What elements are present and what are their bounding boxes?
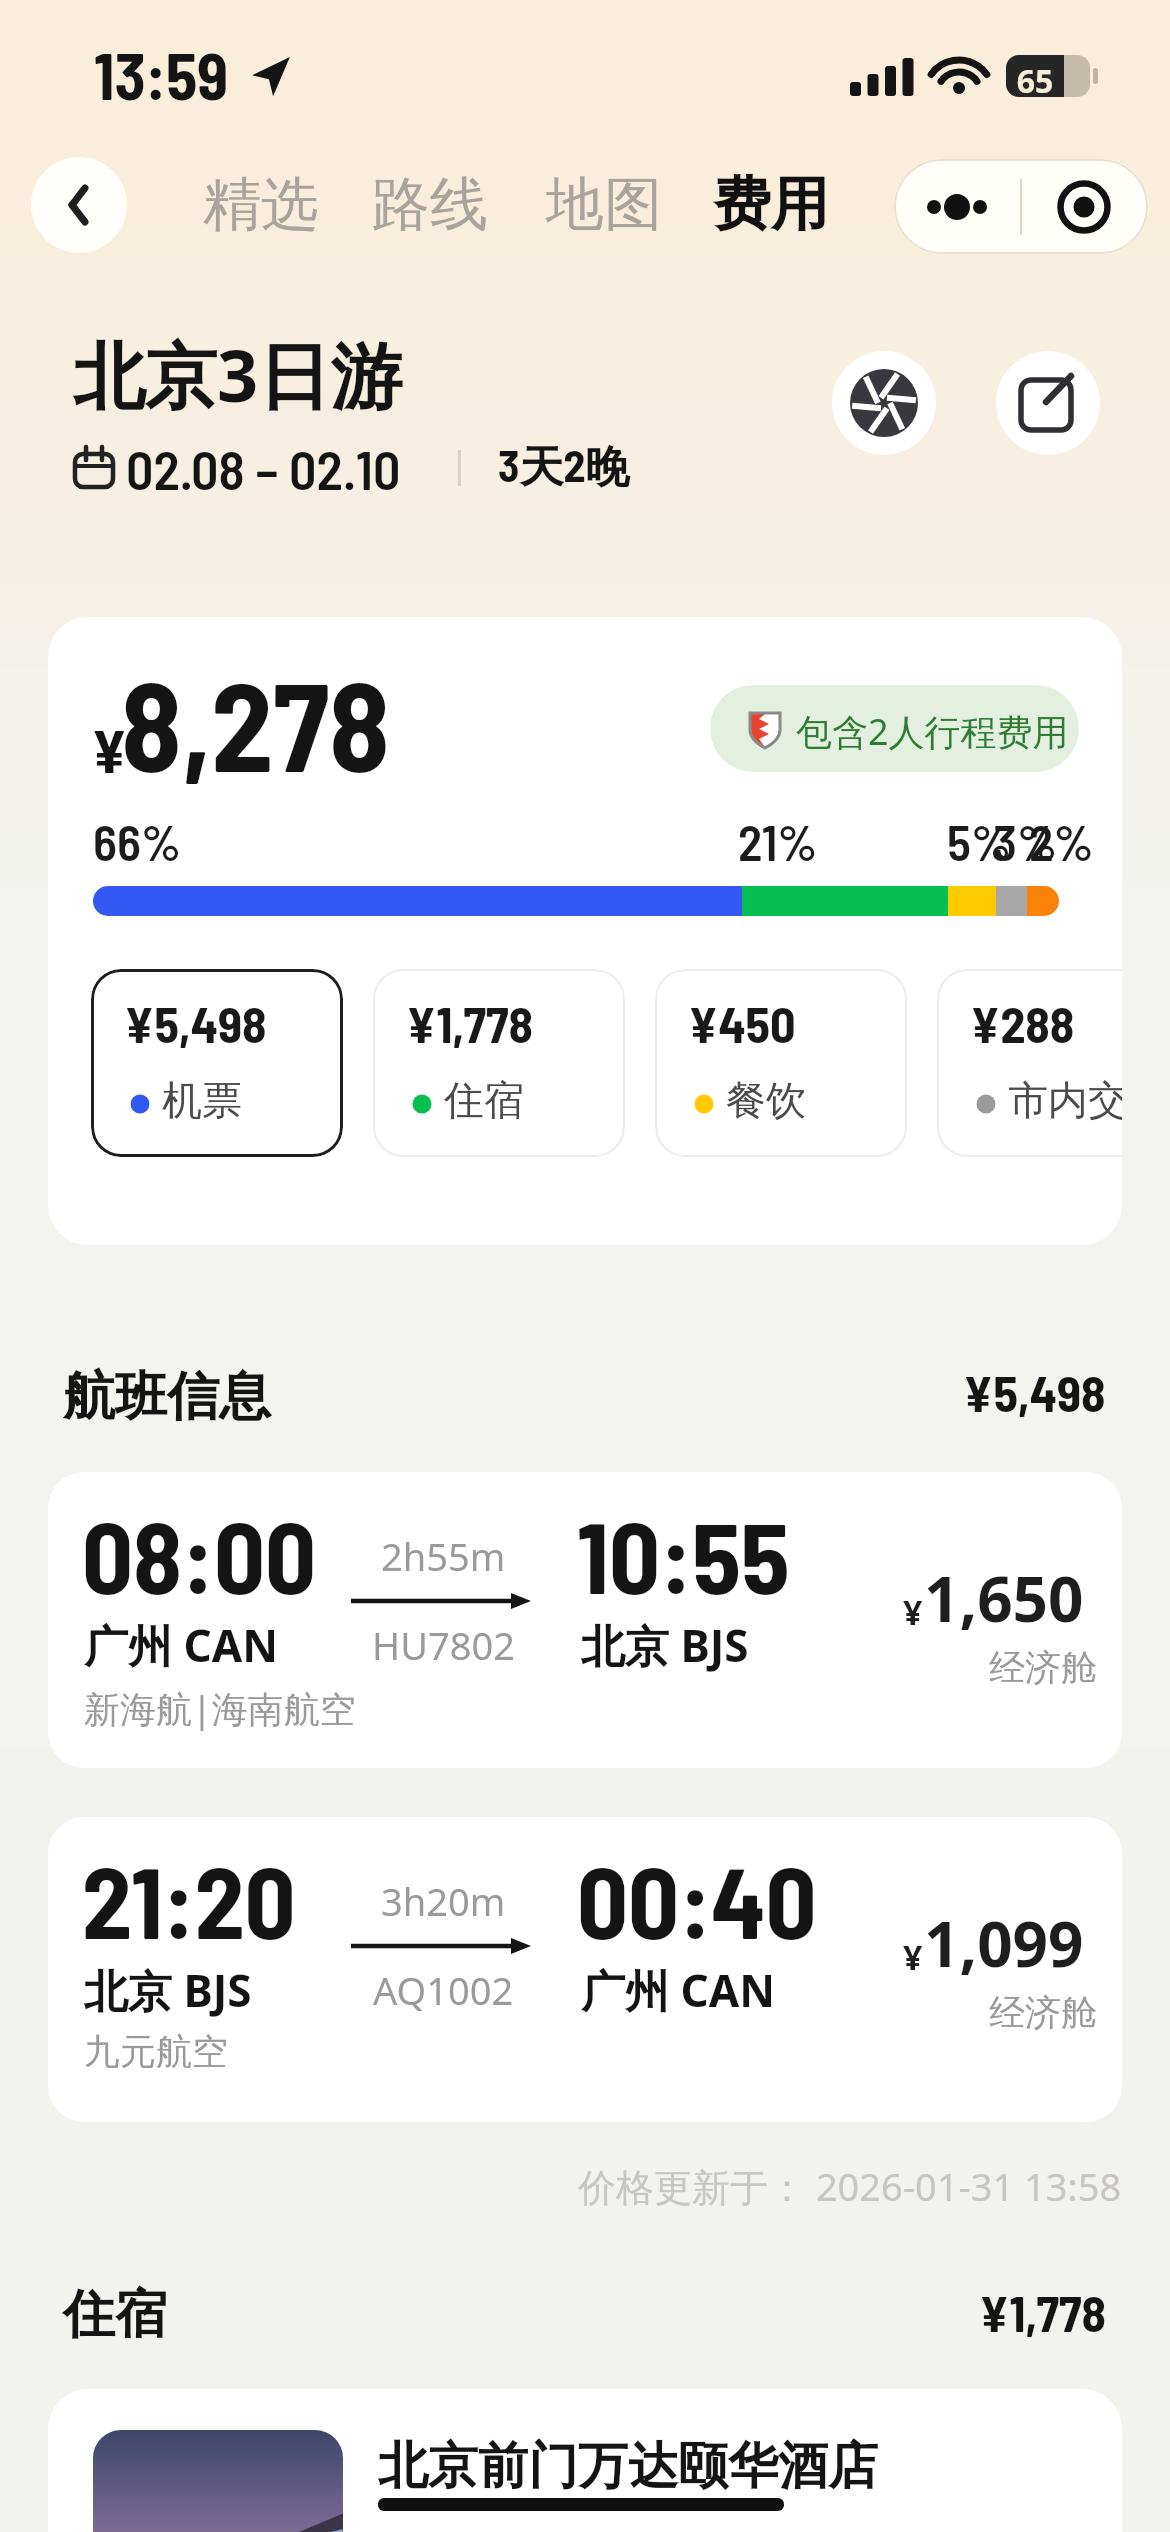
staticText: 市内交通 — [1008, 1075, 1122, 1125]
staticText: 广州 CAN — [581, 1960, 775, 2020]
button[interactable]: 费用 — [713, 168, 829, 241]
button[interactable] — [31, 157, 127, 253]
staticText: 21% — [738, 811, 818, 871]
staticText: 13:59 — [94, 36, 229, 113]
staticText: 北京3日游 — [73, 325, 403, 423]
staticText: 21:20 — [82, 1839, 296, 1959]
staticText: 机票 — [162, 1075, 242, 1125]
button[interactable]: 包含2人行程费用 — [710, 685, 1079, 772]
staticText: ¥5,498 — [124, 993, 267, 1053]
staticText: 2h55m — [381, 1530, 506, 1582]
staticText: 航班信息 — [63, 1364, 271, 1430]
staticText: 精选 — [203, 168, 319, 241]
button[interactable]: 北京前门万达颐华酒店 — [48, 2389, 1122, 2532]
staticText: 北京前门万达颐华酒店 — [378, 2435, 878, 2498]
button[interactable]: ¥288 — [937, 969, 1122, 1157]
staticText: 02.08 – 02.10 — [126, 436, 401, 501]
staticText: ¥ — [903, 1934, 923, 1980]
staticText: 3天2晚 — [498, 438, 630, 495]
staticText: 价格更新于： 2026-01-31 13:58 — [578, 2160, 1122, 2212]
staticText: AQ1002 — [373, 1964, 514, 2016]
staticText: 1,650 — [924, 1556, 1084, 1640]
button[interactable] — [996, 351, 1100, 455]
button[interactable] — [832, 351, 936, 455]
button[interactable]: 地图 — [546, 168, 662, 241]
staticText: ¥450 — [688, 993, 796, 1053]
staticText: 住宿 — [63, 2282, 167, 2348]
staticText: 2% — [1029, 811, 1094, 871]
button[interactable] — [894, 159, 1021, 254]
button[interactable]: ¥1,778 — [373, 969, 625, 1157]
button[interactable]: ¥450 — [655, 969, 907, 1157]
staticText: ¥288 — [970, 993, 1075, 1053]
button[interactable]: ¥5,498 — [91, 969, 343, 1157]
staticText: 3h20m — [381, 1875, 506, 1927]
button[interactable]: 08:00 — [48, 1472, 1122, 1768]
button[interactable]: 精选 — [203, 168, 319, 241]
staticText: 新海航|海南航空 — [84, 1684, 356, 1733]
staticText: 餐饮 — [726, 1075, 806, 1125]
staticText: 1,099 — [924, 1901, 1084, 1985]
staticText: HU7802 — [372, 1619, 515, 1671]
staticText: 8,278 — [121, 648, 390, 797]
staticText: 经济舱 — [989, 1645, 1097, 1690]
staticText: 费用 — [713, 168, 829, 241]
staticText: 北京 BJS — [84, 1960, 252, 2020]
staticText: ¥1,778 — [406, 993, 533, 1053]
staticText: ¥5,498 — [963, 1362, 1106, 1422]
staticText: 路线 — [372, 168, 488, 241]
staticText: 地图 — [546, 168, 662, 241]
staticText: 00:40 — [577, 1839, 817, 1959]
button[interactable]: 21:20 — [48, 1817, 1122, 2122]
staticText: 经济舱 — [989, 1990, 1097, 2035]
staticText: 北京 BJS — [581, 1615, 749, 1675]
staticText: 66% — [93, 811, 181, 871]
staticText: 3% — [993, 811, 1057, 871]
staticText: ¥ — [91, 713, 128, 785]
staticText: ¥1,778 — [979, 2282, 1106, 2342]
staticText: 住宿 — [444, 1075, 524, 1125]
staticText: ¥ — [903, 1589, 923, 1635]
staticText: 九元航空 — [84, 2029, 228, 2074]
button[interactable]: 路线 — [372, 168, 488, 241]
staticText: 广州 CAN — [84, 1615, 278, 1675]
staticText: 5% — [947, 811, 1011, 871]
staticText: 08:00 — [82, 1494, 317, 1614]
staticText: 65 — [1012, 59, 1058, 103]
staticText: 包含2人行程费用 — [796, 707, 1069, 756]
button[interactable] — [1021, 159, 1148, 254]
staticText: 10:55 — [577, 1494, 790, 1614]
